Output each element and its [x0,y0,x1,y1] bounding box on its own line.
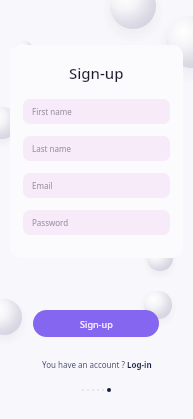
other: Current page [107,388,111,392]
staticText: Email [32,180,53,191]
staticText: Sign-up [80,318,113,330]
staticText: Sign-up [69,63,124,83]
button[interactable]: First name [23,99,170,124]
button[interactable]: Last name [23,136,170,161]
staticText: Last name [32,143,71,154]
button[interactable]: Email [23,173,170,198]
button[interactable]: Sign-up [33,310,159,337]
button[interactable]: You have an account ? Log-in [42,359,152,370]
button[interactable]: Password [23,210,170,235]
staticText: You have an account ? Log-in [42,359,152,370]
staticText: First name [32,106,72,117]
staticText: Password [32,217,69,228]
